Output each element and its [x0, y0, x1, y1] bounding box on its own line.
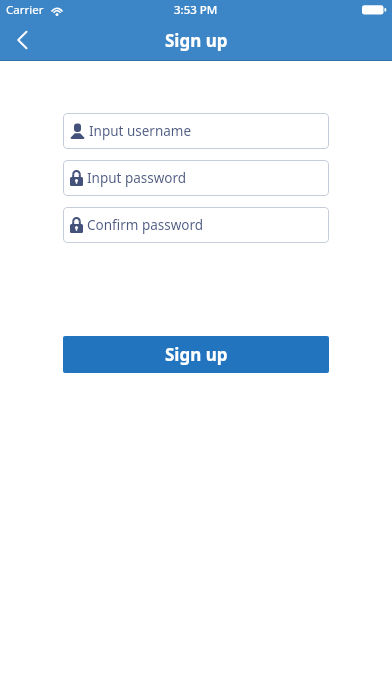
- button[interactable]: Input username: [63, 113, 329, 149]
- staticText: Sign up: [165, 29, 228, 52]
- staticText: Sign up: [165, 343, 228, 366]
- button[interactable]: [0, 20, 44, 60]
- staticText: Confirm password: [87, 216, 204, 234]
- button[interactable]: Input password: [63, 160, 329, 196]
- staticText: Carrier: [6, 2, 44, 18]
- staticText: Input username: [89, 122, 192, 140]
- staticText: Input password: [87, 169, 187, 187]
- button[interactable]: Confirm password: [63, 207, 329, 243]
- staticText: 3:53 PM: [174, 2, 218, 18]
- button[interactable]: Sign up: [63, 336, 329, 373]
